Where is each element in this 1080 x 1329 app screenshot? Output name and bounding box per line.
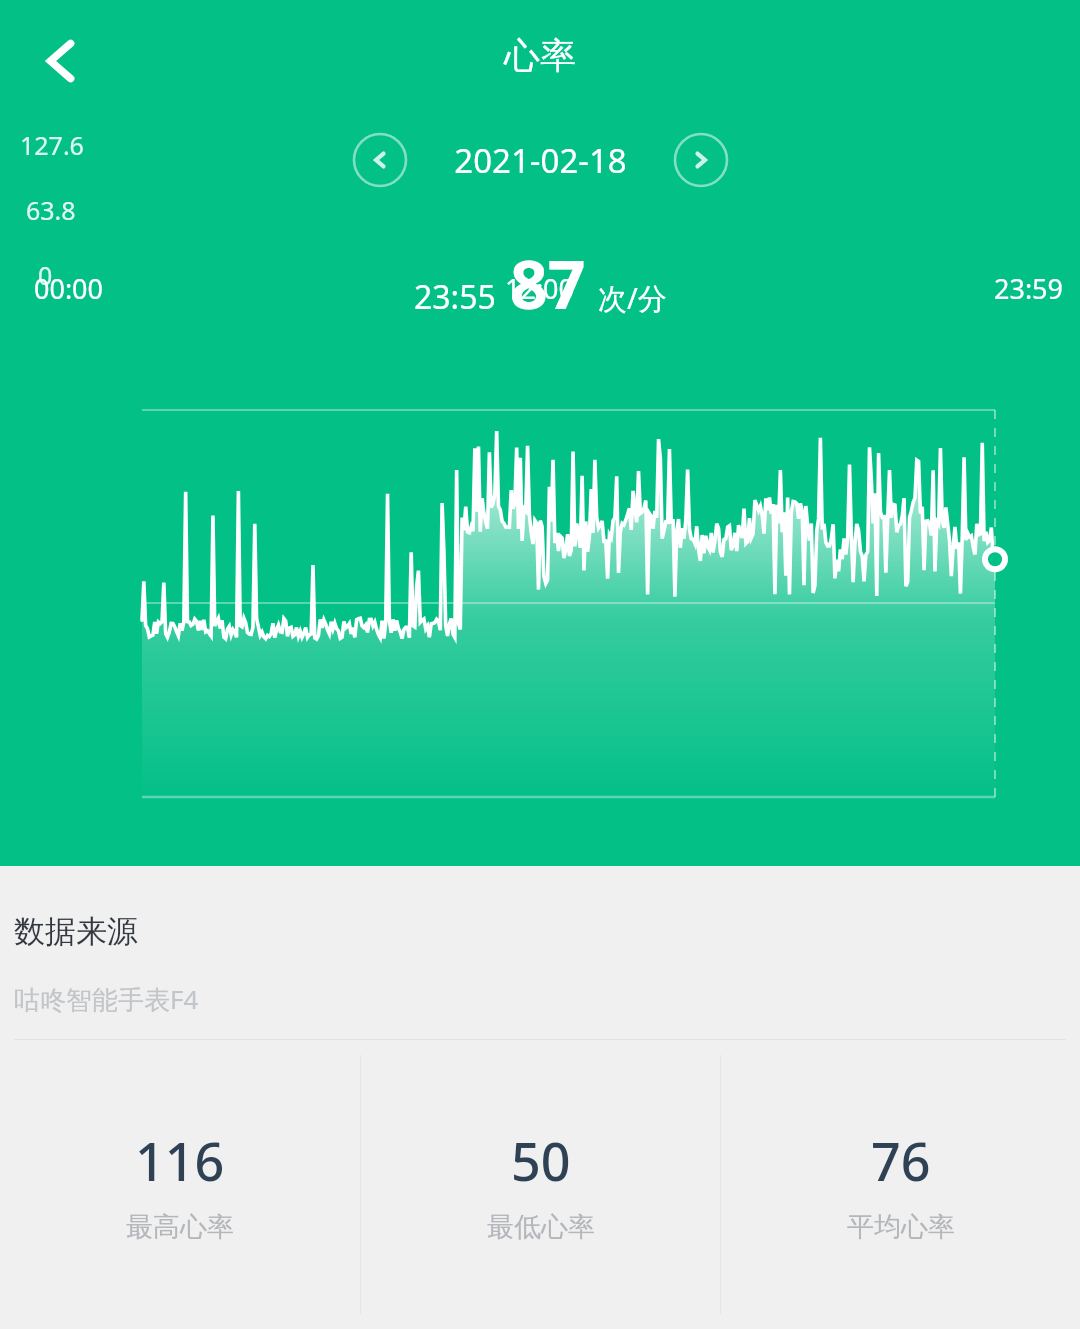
button[interactable]: Back [6,6,116,116]
staticText: 23:59 [994,270,1064,307]
staticText: 咕咚智能手表F4 [14,981,199,1017]
button[interactable]: 76 [721,1040,1080,1329]
staticText: 23:55 [414,275,496,319]
button[interactable]: Previous day [352,132,408,188]
staticText: 0 [38,258,53,292]
staticText: 最低心率 [487,1210,595,1244]
staticText: 2021-02-18 [454,138,627,183]
staticText: 50 [511,1125,571,1196]
button[interactable]: Next day [673,132,729,188]
staticText: 87 [510,238,586,328]
staticText: 最高心率 [126,1210,234,1244]
staticText: 63.8 [26,193,76,227]
staticText: 76 [871,1125,931,1196]
staticText: 116 [135,1125,225,1196]
staticText: 数据来源 [14,912,138,951]
staticText: 心率 [504,33,576,78]
staticText: 平均心率 [847,1210,955,1244]
staticText: 次/分 [598,278,667,318]
staticText: 127.6 [20,128,84,162]
button[interactable]: 116 [0,1040,360,1329]
staticText: 00:00 [34,270,104,307]
staticText: 12:00 [505,270,575,307]
button[interactable]: 50 [361,1040,720,1329]
